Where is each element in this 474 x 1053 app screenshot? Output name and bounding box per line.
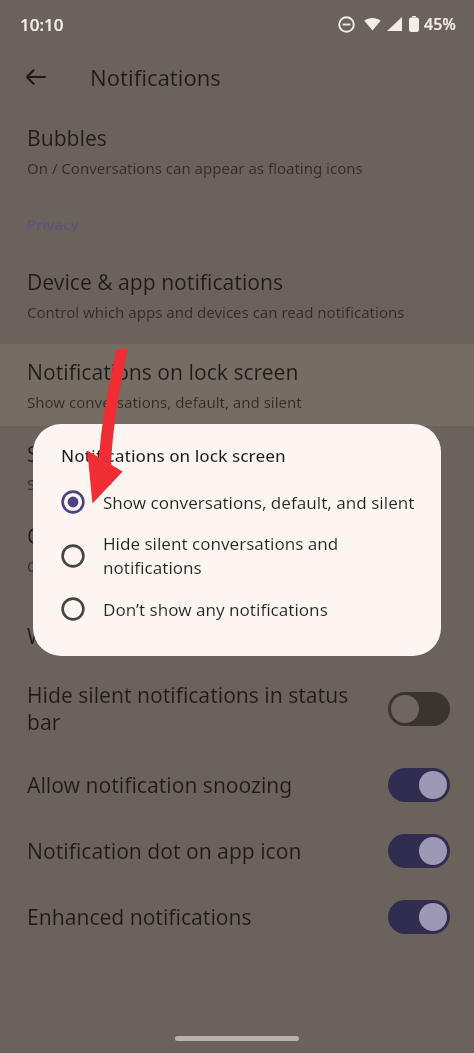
staticText: Show conversations, default, and silent: [27, 392, 302, 412]
staticText: Hide silent notifications in status bar: [27, 681, 370, 736]
staticText: Privacy: [27, 214, 79, 234]
staticText: Allow notification snoozing: [27, 771, 370, 800]
button[interactable]: Sensitive notifications: [0, 426, 474, 508]
staticText: Conversations: [27, 522, 168, 551]
button[interactable]: Don’t show any notifications: [33, 588, 441, 630]
staticText: Device & app notifications: [27, 268, 284, 297]
staticText: Don’t show any notifications: [103, 598, 328, 621]
button[interactable]: Hide silent notifications in status bar: [0, 665, 474, 752]
staticText: Show sensitive content: [27, 474, 189, 494]
button[interactable]: Allow notification snoozing: [0, 752, 474, 818]
button[interactable]: Enhanced notifications: [0, 884, 474, 950]
button[interactable]: Back: [12, 53, 60, 101]
staticText: Hide silent conversations and notificati…: [103, 532, 419, 579]
staticText: 45%: [424, 13, 456, 35]
staticText: Notifications: [90, 62, 221, 92]
button[interactable]: Notification dot on app icon: [0, 818, 474, 884]
staticText: On: [27, 556, 48, 576]
staticText: Show conversations, default, and silent: [103, 491, 415, 514]
button[interactable]: Device & app notifications: [0, 254, 474, 336]
staticText: Wireless emergency alerts: [27, 622, 287, 651]
staticText: 10:10: [20, 13, 64, 36]
button[interactable]: Hide silent conversations and notificati…: [33, 523, 441, 588]
button[interactable]: Bubbles: [0, 110, 474, 192]
button[interactable]: Notifications on lock screen: [0, 344, 474, 426]
button[interactable]: Conversations: [0, 508, 474, 590]
button[interactable]: Show conversations, default, and silent: [33, 481, 441, 523]
button[interactable]: Wireless emergency alerts: [0, 608, 474, 665]
staticText: Notifications on lock screen: [27, 358, 299, 387]
staticText: Enhanced notifications: [27, 903, 370, 932]
staticText: Bubbles: [27, 124, 107, 153]
staticText: Control which apps and devices can read …: [27, 302, 405, 322]
staticText: Notifications on lock screen: [61, 444, 286, 467]
staticText: Sensitive notifications: [27, 440, 242, 469]
staticText: Notification dot on app icon: [27, 837, 370, 866]
staticText: On / Conversations can appear as floatin…: [27, 158, 363, 178]
